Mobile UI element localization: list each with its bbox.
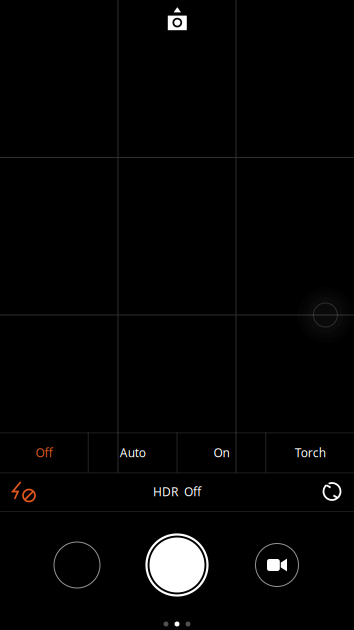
button[interactable]: Off (0, 432, 88, 472)
button[interactable]: Switch camera (314, 474, 350, 508)
staticText: Auto (120, 444, 146, 460)
button[interactable]: Photo library (42, 530, 112, 600)
button[interactable]: Torch (266, 432, 354, 472)
staticText: Off (35, 444, 52, 460)
button[interactable]: HDR Off (117, 474, 237, 508)
button[interactable]: On (177, 432, 265, 472)
staticText: On (213, 444, 229, 460)
button[interactable]: Record video (242, 530, 312, 600)
staticText: HDR Off (153, 483, 201, 499)
button[interactable]: Take photo (137, 525, 217, 605)
button[interactable]: Flash off (4, 474, 44, 508)
staticText: Torch (295, 444, 326, 460)
button[interactable]: Auto (89, 432, 177, 472)
